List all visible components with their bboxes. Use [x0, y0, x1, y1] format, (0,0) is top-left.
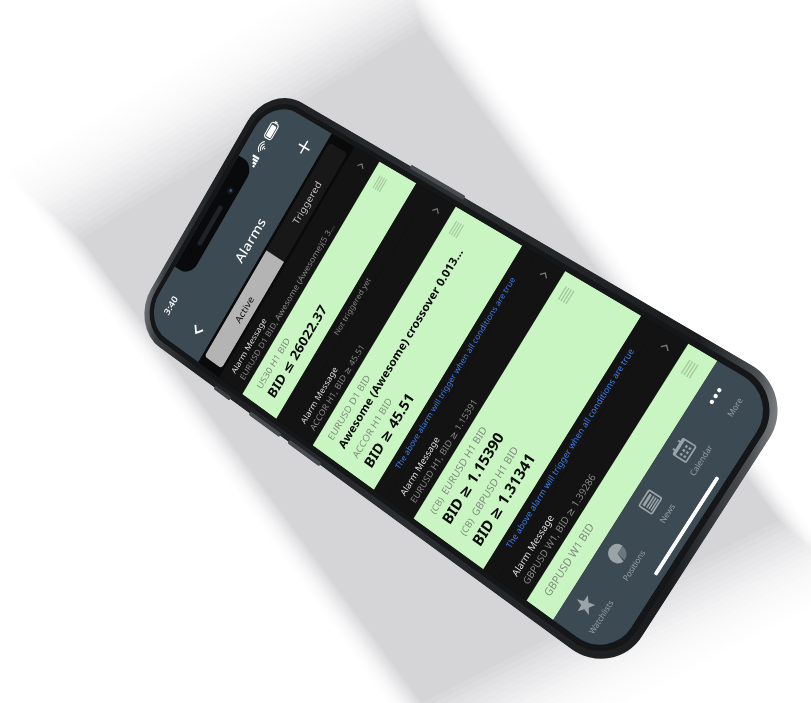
button[interactable]: Calendar [651, 413, 729, 494]
staticText: Not triggered yet [331, 275, 373, 337]
button[interactable]: Triggered [266, 142, 348, 262]
staticText: EURUSD H1 BID [438, 423, 490, 497]
staticText: EURUSD D1 BID, Awesome (Awesome)(5 3… [237, 221, 337, 382]
staticText: 3:40 [161, 293, 180, 317]
staticText: Alarms [231, 214, 270, 266]
staticText: GBPUSD H1 BID [468, 443, 521, 519]
staticText: Triggered [289, 178, 324, 226]
staticText: (CB) [457, 515, 477, 538]
button[interactable]: Alarm Message [219, 147, 429, 427]
staticText: Awesome (Awesome) crossover 0.01370 [335, 244, 467, 451]
staticText: EURUSD H1, BID ≥ 1.15391 [407, 396, 480, 505]
button[interactable]: Add alarm [285, 128, 322, 167]
staticText: ACCOR H1, BID ≥ 45.51 [307, 342, 367, 433]
button[interactable]: Back [180, 311, 215, 350]
button[interactable]: Alarm Message [497, 325, 717, 620]
staticText: GBPUSD W1, BID ≥ 1.39286 [519, 471, 599, 587]
staticText: BID ≥ 1.39286 [552, 507, 614, 602]
button[interactable]: News [618, 466, 695, 547]
staticText: Watchlists [586, 597, 616, 636]
other: Reorder alarm [372, 175, 387, 192]
staticText: The above alarm will trigger when all co… [503, 345, 636, 550]
button[interactable]: Watchlists [553, 569, 629, 651]
staticText: Alarm Message [228, 315, 269, 376]
staticText: BID ≤ 26022.37 [263, 301, 331, 401]
other: Reorder alarm [558, 286, 575, 304]
staticText: EURUSD D1 BID [324, 371, 373, 443]
button[interactable]: Alarm Message [288, 191, 536, 499]
staticText: BID ≥ 1.31341 [467, 449, 540, 550]
staticText: The above alarm will trigger when all co… [392, 274, 517, 471]
staticText: News [656, 501, 677, 525]
staticText: GBPUSD W1 BID [540, 519, 597, 599]
button[interactable]: Positions [586, 517, 662, 599]
staticText: Alarm Message [298, 364, 340, 426]
staticText: Alarm Message [397, 433, 442, 498]
staticText: Alarm Message [508, 511, 557, 579]
button[interactable]: Alarm Message [387, 254, 657, 580]
staticText: ACCOR H1 BID [349, 395, 395, 460]
staticText: US30 H1 BID [254, 335, 293, 391]
staticText: More [724, 395, 745, 419]
button[interactable]: Active [204, 250, 284, 369]
staticText: Positions [620, 547, 648, 583]
staticText: Active [232, 293, 257, 325]
staticText: BID ≥ 1.15390 [437, 428, 508, 528]
staticText: BID ≥ 45.51 [359, 389, 419, 471]
staticText: Calendar [686, 442, 715, 478]
other: Reorder alarm [448, 221, 464, 238]
button[interactable]: More [684, 361, 764, 441]
other: Reorder alarm [680, 359, 699, 379]
staticText: (CB) [427, 494, 446, 516]
